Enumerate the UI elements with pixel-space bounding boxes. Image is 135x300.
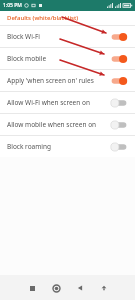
button[interactable]: Off: [110, 119, 128, 131]
button[interactable]: Off: [110, 141, 128, 153]
staticText: 1:05 PM: [3, 2, 22, 9]
staticText: Block Wi-Fi: [7, 32, 110, 41]
button[interactable]: Allow mobile when screen on: [0, 114, 135, 135]
button[interactable]: Block mobile: [0, 48, 135, 69]
button[interactable]: Home: [44, 276, 68, 300]
staticText: Block roaming: [7, 142, 110, 151]
button[interactable]: Block roaming: [0, 136, 135, 157]
button[interactable]: Apply 'when screen on' rules: [0, 70, 135, 91]
staticText: Block mobile: [7, 54, 110, 63]
button[interactable]: On: [110, 31, 128, 43]
staticText: Apply 'when screen on' rules: [7, 76, 110, 85]
button[interactable]: Back: [68, 276, 92, 300]
staticText: Allow mobile when screen on: [7, 120, 110, 129]
button[interactable]: Allow Wi-Fi when screen on: [0, 92, 135, 113]
button[interactable]: Block Wi-Fi: [0, 26, 135, 47]
button[interactable]: Keyboard: [92, 276, 116, 300]
button[interactable]: On: [110, 53, 128, 65]
button[interactable]: Off: [110, 97, 128, 109]
button[interactable]: Recents: [20, 276, 44, 300]
button[interactable]: On: [110, 75, 128, 87]
staticText: Allow Wi-Fi when screen on: [7, 98, 110, 107]
staticText: Defaults (white/blacklist): [7, 14, 79, 22]
